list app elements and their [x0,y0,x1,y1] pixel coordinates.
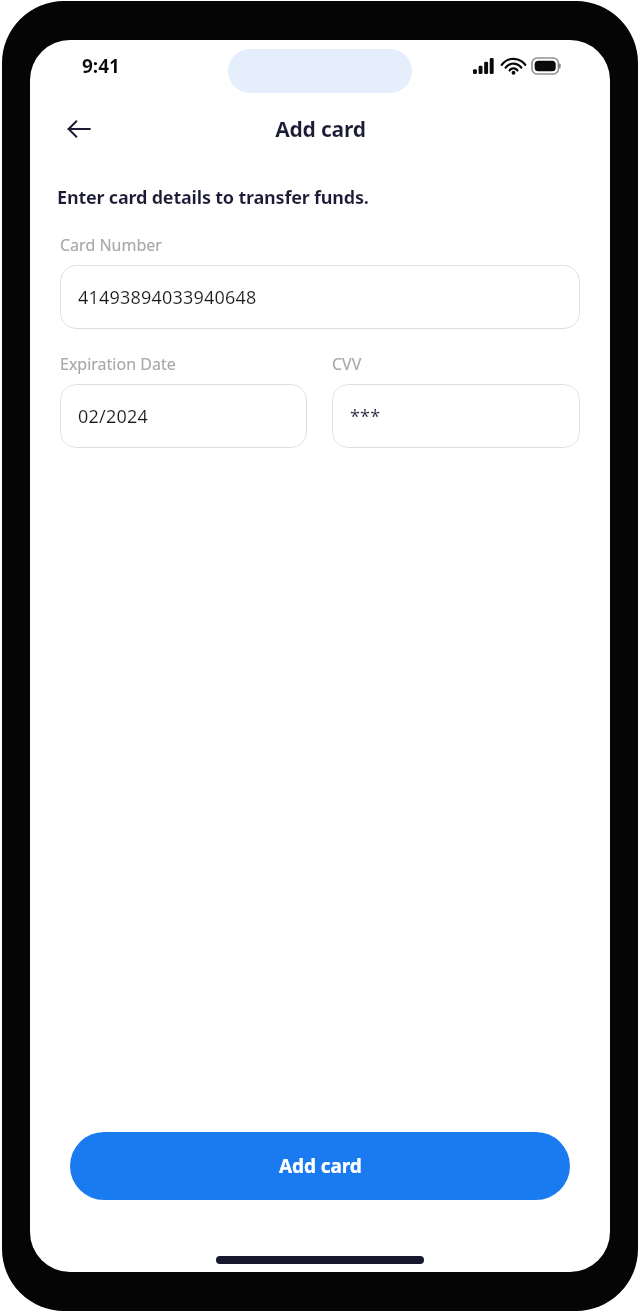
button[interactable]: 02/2024 [60,384,307,448]
staticText: Enter card details to transfer funds. [57,185,369,210]
staticText: *** [350,404,381,429]
staticText: 41493894033940648 [78,285,257,310]
staticText: CVV [332,353,362,375]
button[interactable]: Add card [70,1132,570,1200]
button[interactable]: *** [332,384,580,448]
button[interactable]: Back [57,107,101,151]
staticText: Add card [279,1153,362,1179]
staticText: Add card [275,115,366,144]
staticText: 9:41 [82,53,120,79]
staticText: Expiration Date [60,353,176,375]
staticText: Card Number [60,234,162,256]
button[interactable]: 41493894033940648 [60,265,580,329]
staticText: 02/2024 [78,404,148,429]
